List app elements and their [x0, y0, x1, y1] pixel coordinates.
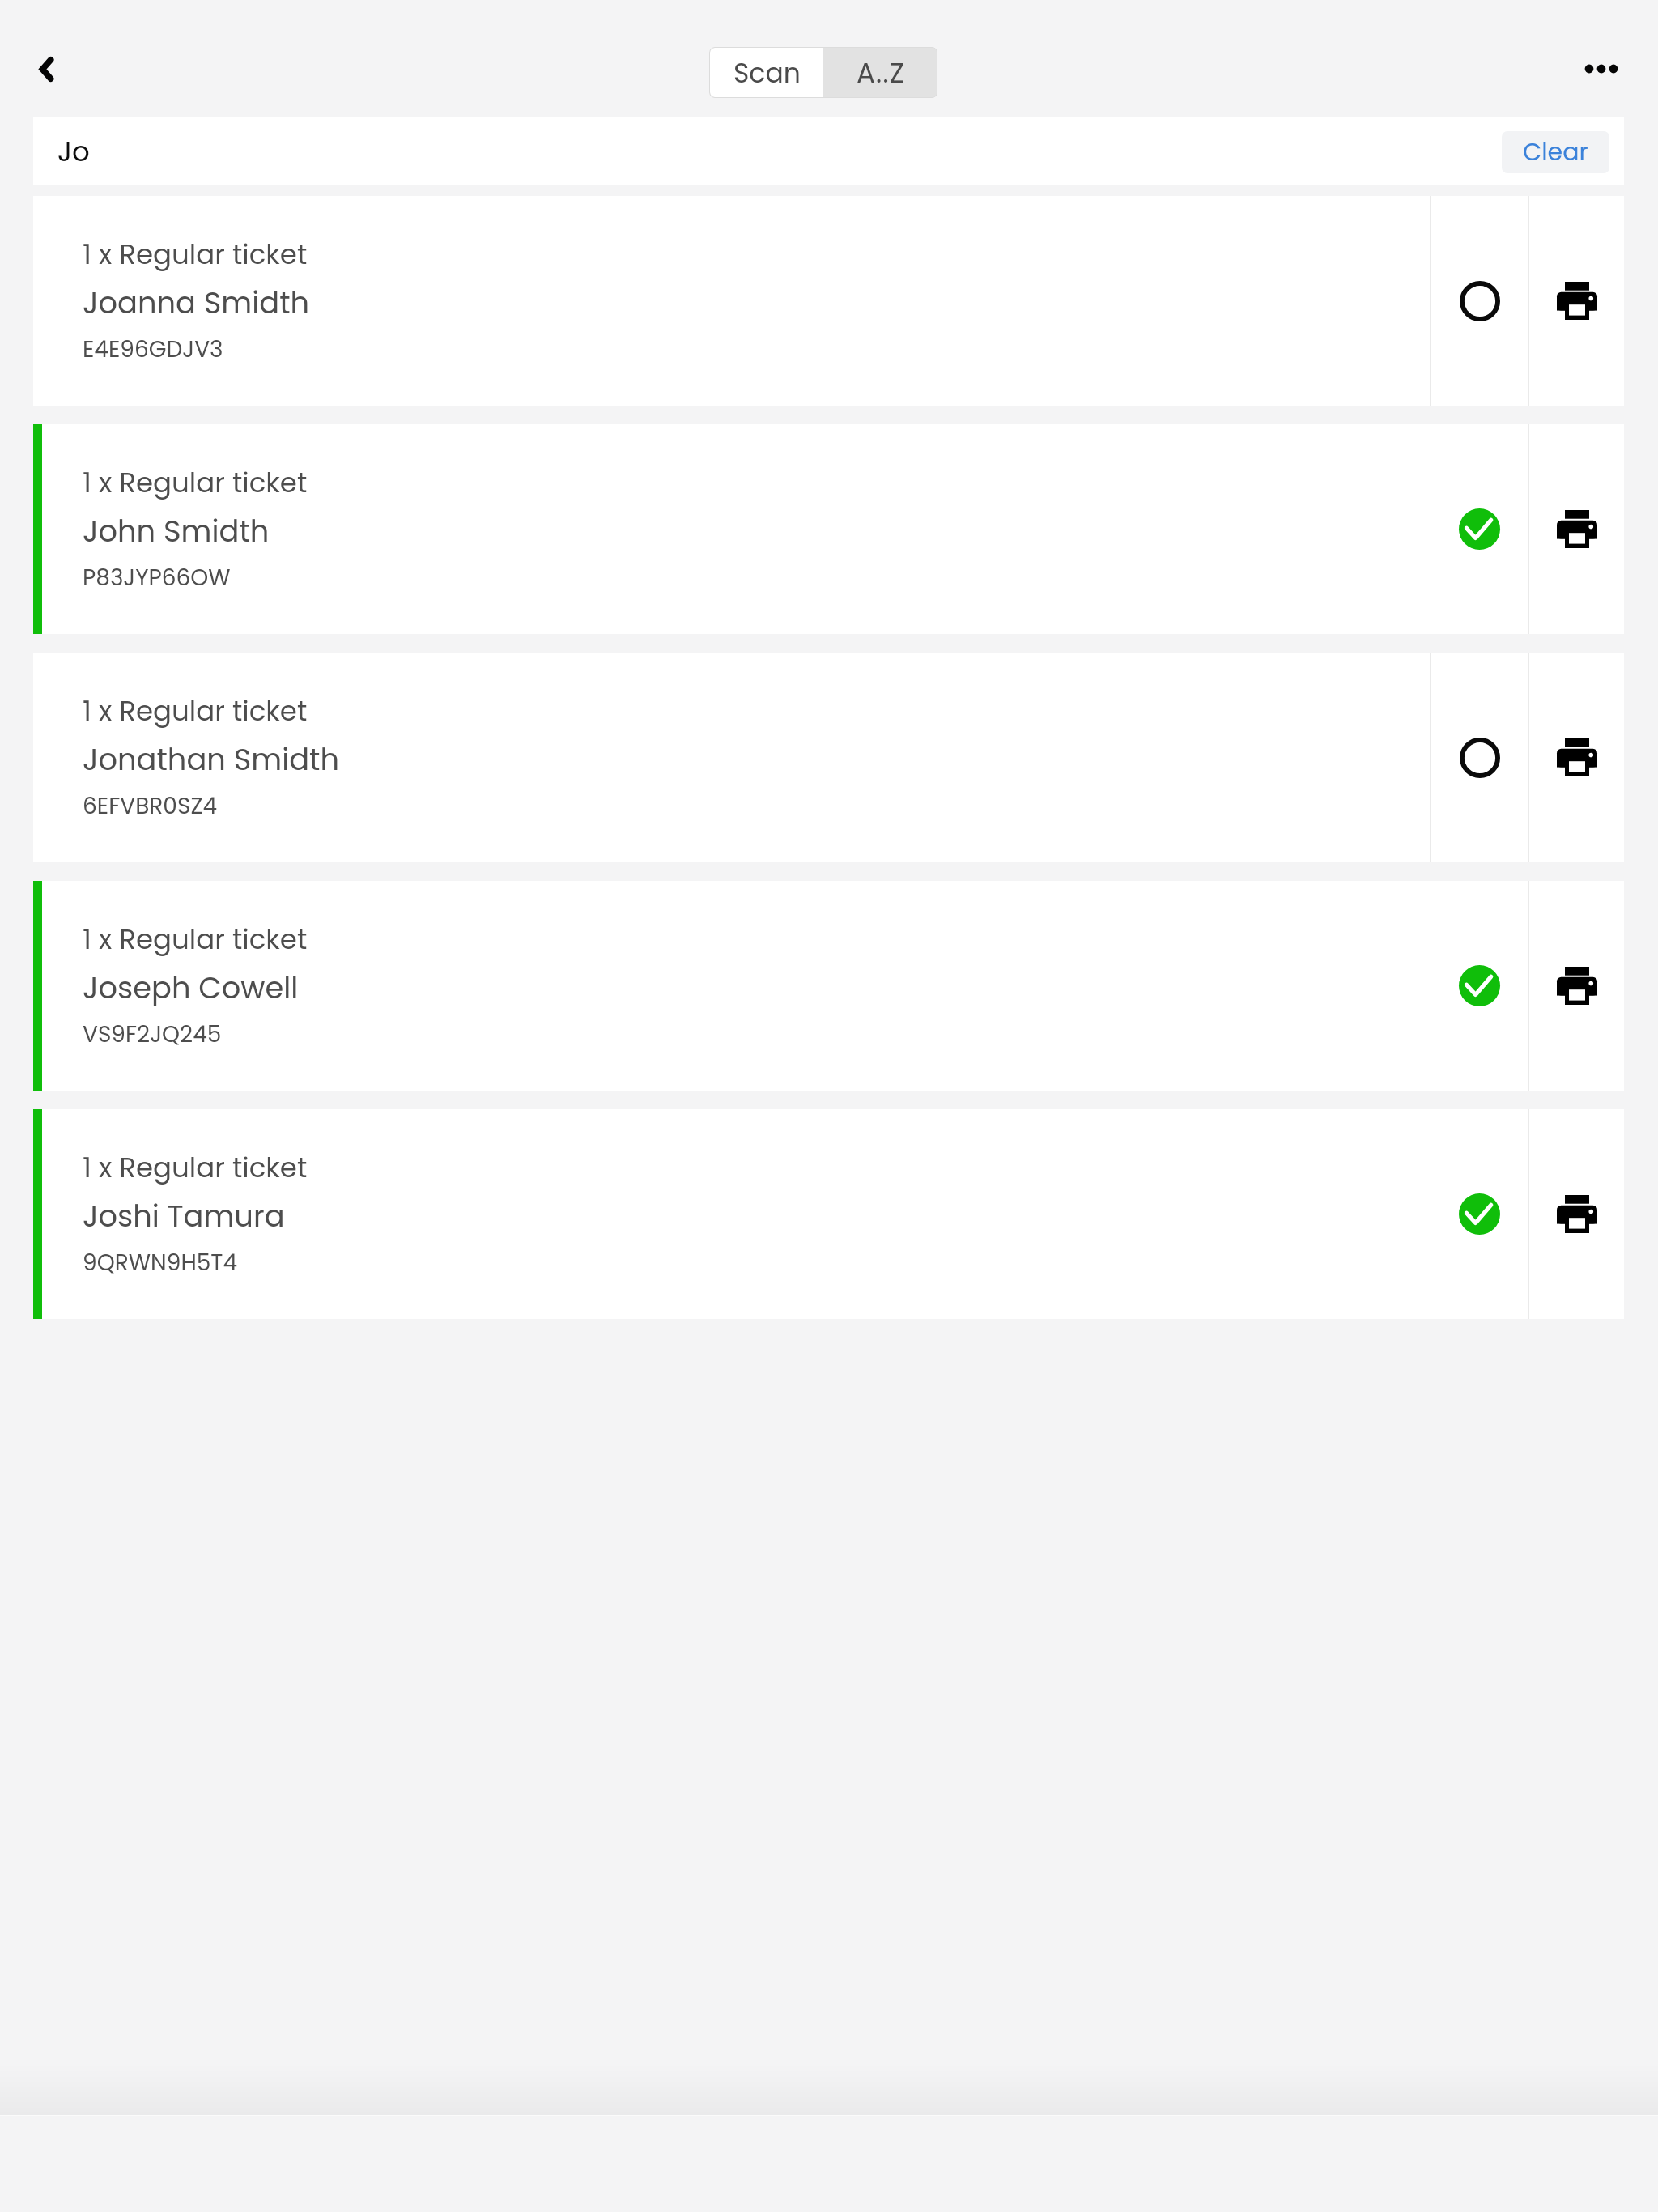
button[interactable]: Print ticket	[1529, 196, 1624, 406]
button[interactable]: Print ticket	[1529, 881, 1624, 1091]
button[interactable]: 1 x Regular ticket	[33, 1109, 1624, 1319]
staticText: Joshi Tamura	[83, 1195, 285, 1237]
button[interactable]: Checked in	[1431, 881, 1528, 1091]
button[interactable]: Back	[6, 13, 86, 92]
button[interactable]: Checked in	[1431, 1109, 1528, 1319]
staticText: 1 x Regular ticket	[83, 1148, 308, 1187]
staticText: A..Z	[857, 53, 906, 92]
button[interactable]: Print ticket	[1529, 653, 1624, 862]
button[interactable]: Checked in	[1431, 424, 1528, 634]
button[interactable]: Scan	[709, 47, 824, 98]
staticText: Joanna Smidth	[83, 282, 310, 324]
staticText: Clear	[1523, 135, 1588, 169]
staticText: VS9F2JQ245	[83, 1019, 222, 1050]
button[interactable]: More options	[1562, 29, 1641, 108]
staticText: John Smidth	[83, 510, 270, 552]
button[interactable]: Print ticket	[1529, 424, 1624, 634]
button[interactable]: 1 x Regular ticket	[33, 653, 1624, 862]
staticText: 1 x Regular ticket	[83, 691, 308, 730]
staticText: E4E96GDJV3	[83, 334, 223, 365]
button[interactable]: A..Z	[824, 47, 937, 98]
button[interactable]: Check in	[1431, 653, 1528, 862]
staticText: 1 x Regular ticket	[83, 463, 308, 502]
staticText: Jo	[57, 132, 90, 171]
button[interactable]: 1 x Regular ticket	[33, 196, 1624, 406]
staticText: Jonathan Smidth	[83, 738, 340, 781]
staticText: 6EFVBR0SZ4	[83, 790, 218, 822]
staticText: Scan	[733, 54, 801, 91]
button[interactable]: Print ticket	[1529, 1109, 1624, 1319]
button[interactable]: 1 x Regular ticket	[33, 881, 1624, 1091]
staticText: 1 x Regular ticket	[83, 235, 308, 274]
staticText: Joseph Cowell	[83, 967, 299, 1009]
button[interactable]: 1 x Regular ticket	[33, 424, 1624, 634]
staticText: 9QRWN9H5T4	[83, 1247, 238, 1278]
staticText: 1 x Regular ticket	[83, 920, 308, 959]
button[interactable]: Clear	[1502, 131, 1609, 173]
staticText: P83JYP66OW	[83, 562, 231, 593]
button[interactable]: Check in	[1431, 196, 1528, 406]
